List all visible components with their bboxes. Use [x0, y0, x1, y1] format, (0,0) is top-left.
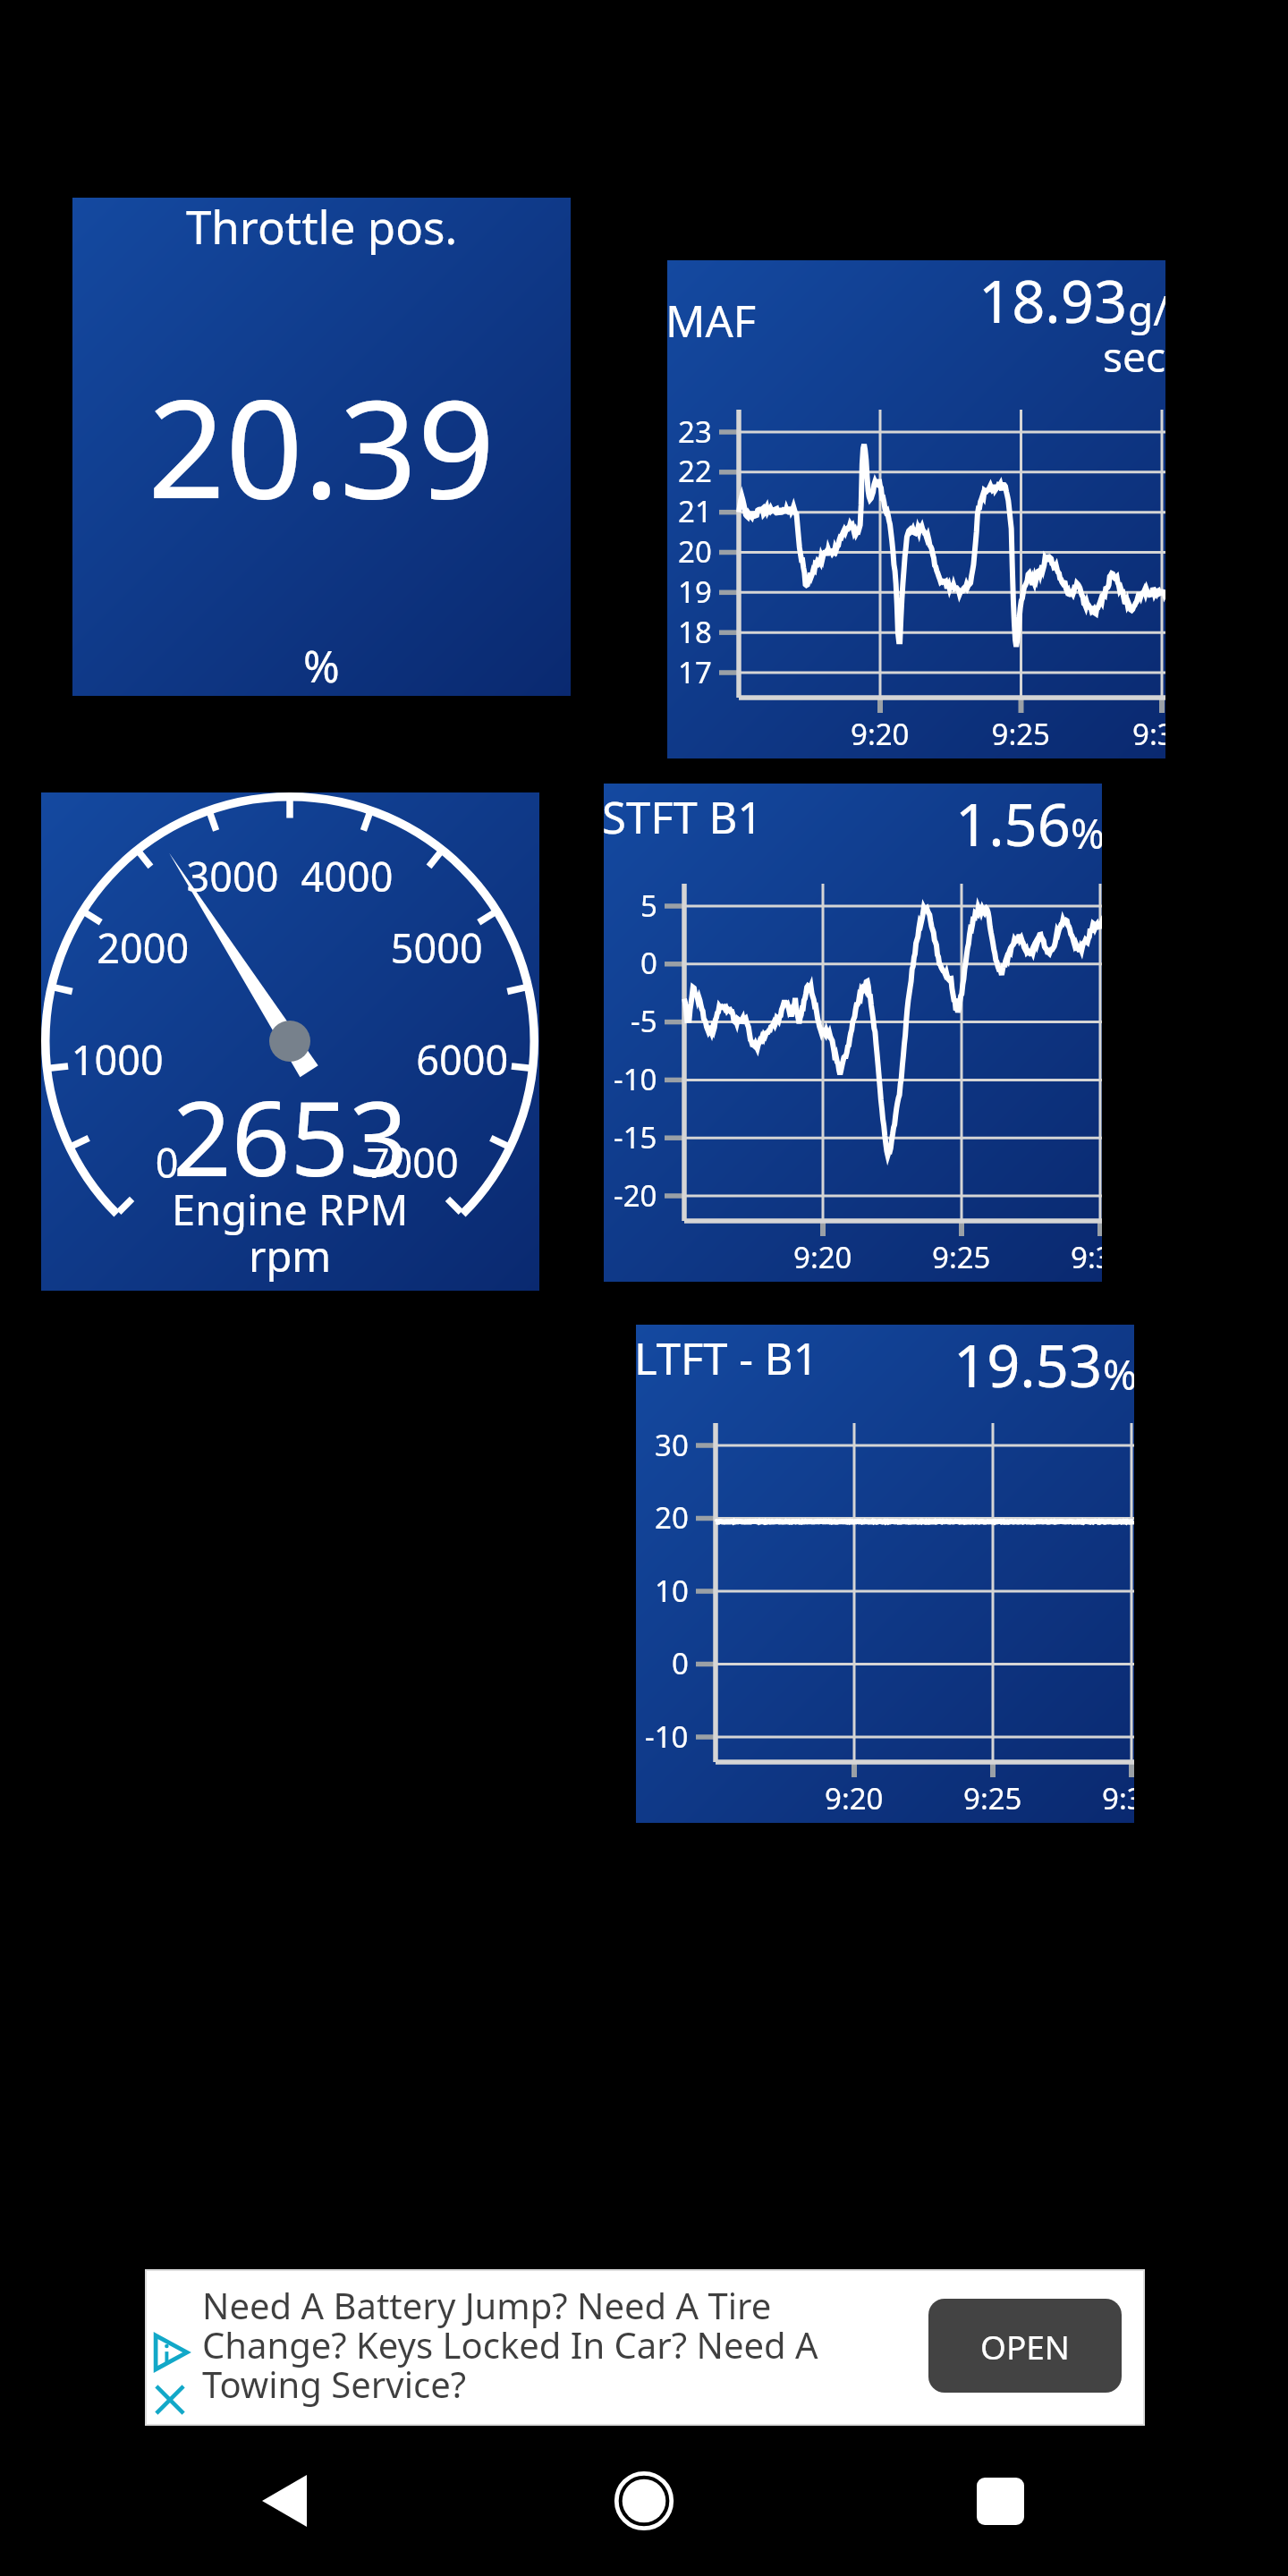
button[interactable]: OPEN: [928, 2299, 1122, 2393]
button[interactable]: 2653: [41, 792, 539, 1291]
button[interactable]: MAF: [667, 260, 1165, 758]
staticText: %: [303, 636, 340, 696]
staticText: OPEN: [980, 2324, 1070, 2368]
staticText: Throttle pos.: [186, 198, 458, 257]
staticText: 2653: [173, 1066, 409, 1207]
staticText: Engine RPM: [172, 1181, 409, 1238]
button[interactable]: Ad information: [147, 2271, 1143, 2424]
staticText: LTFT - B1: [636, 1328, 818, 1388]
button[interactable]: LTFT - B1: [636, 1325, 1134, 1823]
staticText: 20.39: [148, 353, 496, 538]
staticText: %: [1103, 1346, 1134, 1402]
button[interactable]: Back: [215, 2431, 354, 2571]
button[interactable]: Throttle pos.: [72, 198, 571, 696]
staticText: %: [1071, 805, 1102, 861]
button[interactable]: Home: [574, 2431, 714, 2571]
staticText: rpm: [249, 1227, 332, 1284]
button[interactable]: Close ad: [154, 2384, 186, 2416]
button[interactable]: Ad information: [152, 2333, 189, 2372]
staticText: 19.53: [953, 1326, 1103, 1405]
staticText: 18.93: [979, 261, 1128, 341]
staticText: STFT B1: [604, 787, 763, 847]
staticText: Need A Battery Jump? Need A Tire Change?…: [202, 2281, 855, 2408]
staticText: 1.56: [955, 784, 1071, 864]
button[interactable]: Recent apps: [930, 2431, 1070, 2571]
staticText: MAF: [667, 291, 757, 351]
button[interactable]: STFT B1: [604, 784, 1102, 1282]
staticText: sec: [1103, 328, 1165, 385]
staticText: g/: [1128, 282, 1165, 338]
